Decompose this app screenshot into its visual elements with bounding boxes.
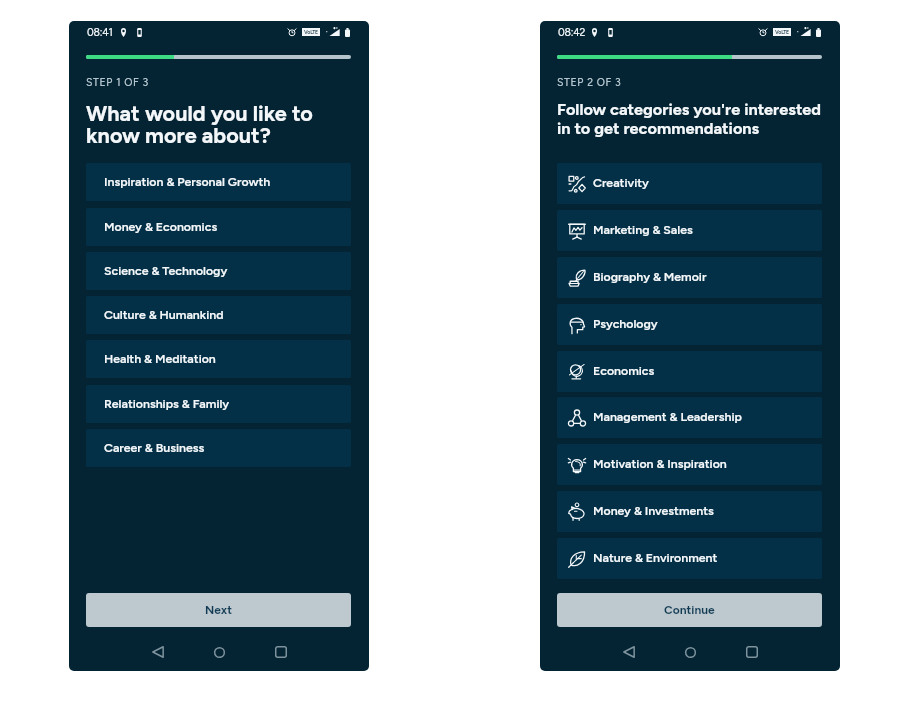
staticText: Health & Meditation <box>104 351 216 366</box>
staticText: Continue <box>664 603 715 617</box>
staticText: Economics <box>593 363 655 378</box>
staticText: STEP 2 OF 3 <box>557 76 622 89</box>
button[interactable]: Management & Leadership <box>557 397 822 438</box>
button[interactable]: Continue <box>557 593 822 627</box>
staticText: Money & Investments <box>593 503 714 518</box>
button[interactable]: Relationships & Family <box>86 385 351 423</box>
staticText: Relationships & Family <box>104 396 230 411</box>
button[interactable]: Inspiration & Personal Growth <box>86 163 351 201</box>
button[interactable]: Recent apps <box>267 638 295 666</box>
staticText: 08:41 <box>87 26 113 39</box>
staticText: Management & Leadership <box>593 409 742 424</box>
button[interactable]: Money & Economics <box>86 208 351 246</box>
staticText: Nature & Environment <box>593 550 718 565</box>
button[interactable]: Home <box>676 638 704 666</box>
staticText: STEP 1 OF 3 <box>86 76 149 89</box>
staticText: Creativity <box>593 175 649 190</box>
staticText: Career & Business <box>104 440 205 455</box>
staticText: Money & Economics <box>104 219 218 234</box>
button[interactable]: Money & Investments <box>557 491 822 532</box>
staticText: Motivation & Inspiration <box>593 456 727 471</box>
button[interactable]: Health & Meditation <box>86 340 351 378</box>
staticText: Next <box>205 603 232 617</box>
button[interactable]: Science & Technology <box>86 252 351 290</box>
button[interactable]: Culture & Humankind <box>86 296 351 334</box>
staticText: Marketing & Sales <box>593 222 693 237</box>
staticText: Culture & Humankind <box>104 307 224 322</box>
staticText: VoLTE <box>304 29 318 35</box>
staticText: What would you like to know more about? <box>86 100 354 149</box>
button[interactable]: Next <box>86 593 351 627</box>
button[interactable]: Creativity <box>557 163 822 204</box>
staticText: Follow categories you're interested in t… <box>557 100 825 138</box>
button[interactable]: Home <box>205 638 233 666</box>
button[interactable]: Career & Business <box>86 429 351 467</box>
staticText: Biography & Memoir <box>593 269 707 284</box>
button[interactable]: Psychology <box>557 304 822 345</box>
button[interactable]: Motivation & Inspiration <box>557 444 822 485</box>
button[interactable]: Biography & Memoir <box>557 257 822 298</box>
button[interactable]: Economics <box>557 351 822 392</box>
staticText: VoLTE <box>775 29 789 35</box>
staticText: Science & Technology <box>104 263 228 278</box>
button[interactable]: Marketing & Sales <box>557 210 822 251</box>
button[interactable]: Back <box>615 638 643 666</box>
staticText: Psychology <box>593 316 658 331</box>
staticText: Inspiration & Personal Growth <box>104 174 271 189</box>
staticText: 08:42 <box>558 26 586 39</box>
button[interactable]: Recent apps <box>738 638 766 666</box>
button[interactable]: Nature & Environment <box>557 538 822 579</box>
button[interactable]: Back <box>144 638 172 666</box>
